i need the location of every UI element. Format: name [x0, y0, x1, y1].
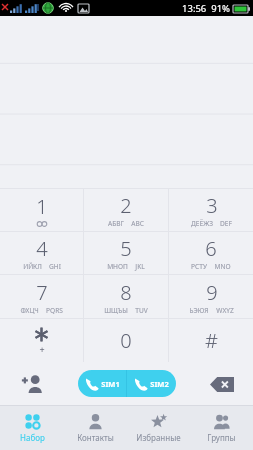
staticText: ИЙКЛ [23, 262, 42, 271]
button[interactable]: 1 [0, 189, 83, 231]
staticText: 5 [120, 235, 132, 262]
staticText: + [39, 343, 45, 355]
button[interactable]: Набор [0, 406, 64, 450]
button[interactable]: 6 [169, 232, 253, 274]
staticText: PQRS [46, 306, 63, 315]
button[interactable]: 5 [84, 232, 168, 274]
staticText: ДЕЁЖЗ [191, 219, 213, 228]
staticText: 8 [120, 279, 132, 306]
button[interactable]: 4 [0, 232, 83, 274]
button[interactable]: Избранные [127, 406, 190, 450]
staticText: # [205, 327, 218, 354]
staticText: WXYZ [216, 306, 234, 315]
staticText: Набор [20, 432, 45, 443]
staticText: 3 [206, 192, 218, 219]
staticText: ABC [131, 219, 144, 228]
button[interactable]: Контакты [64, 406, 127, 450]
staticText: АБВГ [108, 219, 124, 228]
staticText: Группы [207, 432, 236, 443]
staticText: DEF [220, 219, 232, 228]
button[interactable]: SIM2 [127, 370, 176, 397]
staticText: 6 [205, 235, 217, 262]
staticText: MNO [214, 262, 231, 271]
button[interactable]: SIM1 [78, 370, 126, 397]
staticText: 1 [36, 193, 48, 220]
staticText: SIM2 [150, 379, 169, 389]
button[interactable]: 7 [0, 275, 83, 318]
button[interactable]: 3 [169, 189, 253, 231]
staticText: Избранные [136, 432, 181, 443]
button[interactable]: 2 [84, 189, 168, 231]
staticText: Контакты [77, 432, 114, 443]
button[interactable]: Группы [190, 406, 253, 450]
staticText: 0 [120, 327, 132, 354]
staticText: 9 [206, 279, 218, 306]
staticText: 13:56 91% [182, 2, 230, 15]
staticText: ФХЦЧ [20, 306, 39, 315]
staticText: JKL [135, 262, 145, 271]
staticText: SIM1 [101, 379, 120, 389]
staticText: 7 [36, 279, 48, 306]
staticText: GHI [49, 262, 61, 271]
button[interactable]: 0 [84, 319, 168, 362]
staticText: ШЩЪЫ [104, 306, 128, 315]
button[interactable]: + [0, 319, 83, 362]
staticText: 4 [36, 235, 48, 262]
button[interactable]: Delete [205, 367, 239, 401]
button[interactable]: 9 [169, 275, 253, 318]
staticText: TUV [135, 306, 148, 315]
button[interactable]: # [169, 319, 253, 362]
staticText: ЬЭЮЯ [189, 306, 209, 315]
button[interactable]: Add contact [16, 367, 50, 401]
staticText: МНОП [107, 262, 128, 271]
staticText: 2 [120, 192, 132, 219]
staticText: РСТУ [191, 262, 207, 271]
button[interactable]: 8 [84, 275, 168, 318]
